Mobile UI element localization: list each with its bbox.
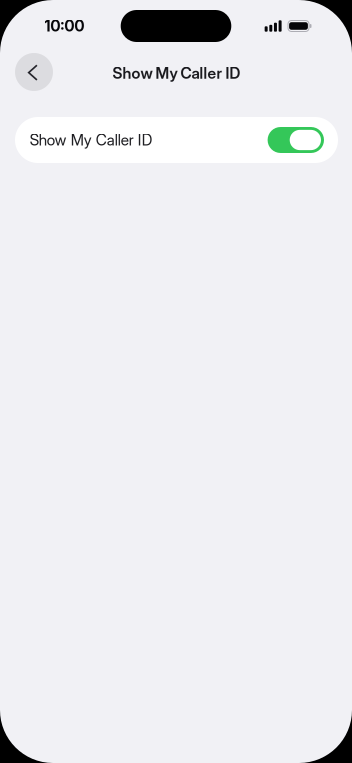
staticText: 10:00 (44, 17, 84, 35)
button[interactable]: Back (15, 53, 53, 91)
staticText: Show My Caller ID (112, 64, 240, 82)
button[interactable]: Show My Caller ID (15, 117, 338, 163)
staticText: Show My Caller ID (30, 131, 153, 149)
